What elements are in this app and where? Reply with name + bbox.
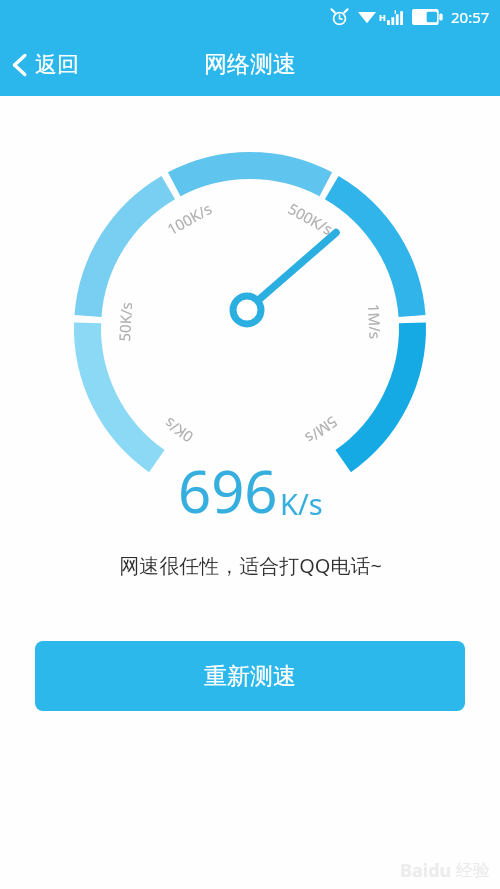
staticText: 20:57 bbox=[451, 7, 490, 27]
staticText: 重新测速 bbox=[204, 662, 296, 691]
staticText: 网络测速 bbox=[204, 50, 296, 79]
staticText: 696 bbox=[178, 451, 278, 530]
staticText: K/s bbox=[280, 484, 323, 523]
staticText: H bbox=[379, 11, 386, 23]
staticText: Baidu bbox=[400, 858, 452, 883]
staticText: 返回 bbox=[35, 51, 79, 79]
staticText: 网速很任性，适合打QQ电话~ bbox=[119, 552, 382, 579]
button[interactable]: 返回 bbox=[0, 33, 93, 96]
button[interactable]: 重新测速 bbox=[35, 641, 465, 711]
staticText: 经验 bbox=[456, 860, 490, 881]
